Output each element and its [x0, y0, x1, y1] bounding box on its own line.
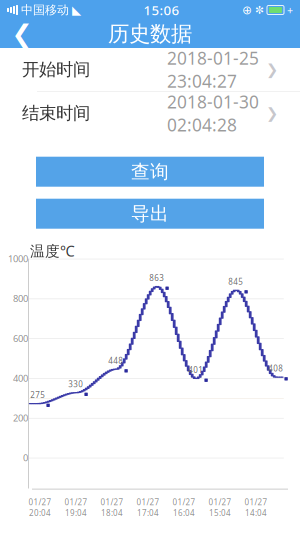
button[interactable]: 查询	[36, 157, 264, 187]
staticText: 查询	[131, 160, 169, 183]
staticText: 01/27	[64, 497, 87, 507]
staticText: 400	[13, 372, 28, 384]
button[interactable]: 结束时间	[0, 92, 300, 135]
staticText: 历史数据	[108, 21, 192, 47]
staticText: 16:04	[173, 507, 195, 518]
staticText: 448	[108, 355, 123, 366]
staticText: ❯	[266, 105, 278, 121]
staticText: 导出	[131, 202, 169, 225]
staticText: 结束时间	[22, 103, 90, 124]
staticText: 14:04	[245, 507, 267, 518]
staticText: 330	[68, 379, 83, 389]
staticText: 408	[268, 363, 283, 374]
staticText: ❯	[266, 61, 278, 78]
staticText: 275	[30, 390, 45, 400]
staticText: 401	[188, 365, 203, 375]
staticText: 01/27	[100, 497, 123, 507]
staticText: 200	[13, 412, 28, 424]
staticText: ◣	[72, 3, 81, 17]
staticText: 开始时间	[22, 59, 90, 80]
staticText: 1000	[8, 252, 28, 265]
staticText: 15:04	[209, 507, 231, 518]
staticText: 15:06	[143, 1, 179, 19]
staticText: ❮	[11, 20, 32, 48]
staticText: 19:04	[65, 507, 87, 518]
staticText: 0	[23, 451, 28, 464]
staticText: 01/27	[28, 497, 51, 507]
staticText: 01/27	[136, 497, 159, 507]
staticText: 20:04	[29, 507, 51, 518]
staticText: 2018-01-25 23:04:27	[167, 46, 259, 92]
staticText: 800	[13, 292, 28, 305]
button[interactable]: Back	[0, 20, 44, 48]
staticText: ✼	[255, 4, 264, 16]
button[interactable]: 开始时间	[0, 48, 300, 92]
staticText: ⊕	[242, 3, 252, 17]
staticText: 01/27	[244, 497, 267, 507]
staticText: 863	[149, 273, 164, 283]
staticText: +	[287, 3, 293, 17]
staticText: 01/27	[172, 497, 195, 507]
staticText: 01/27	[208, 497, 231, 507]
staticText: 2018-01-30 02:04:28	[167, 90, 259, 136]
staticText: 中国移动	[21, 3, 69, 17]
button[interactable]: 导出	[36, 199, 264, 229]
staticText: 600	[13, 332, 28, 344]
staticText: 温度℃	[30, 241, 75, 260]
staticText: 17:04	[137, 507, 159, 518]
staticText: 845	[228, 276, 243, 287]
staticText: 18:04	[101, 507, 123, 518]
